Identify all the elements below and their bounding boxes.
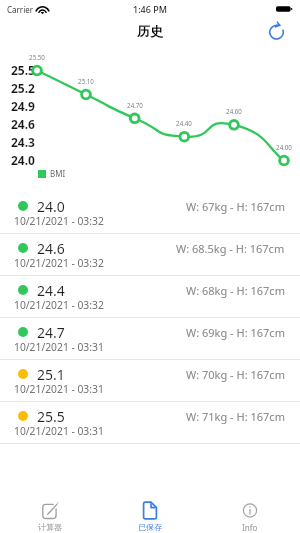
staticText: 24.60 — [226, 107, 242, 115]
staticText: W: 69kg - H: 167cm — [186, 325, 285, 340]
staticText: 24.4 — [37, 281, 65, 300]
staticText: BMI — [50, 168, 66, 179]
button[interactable]: 25.1 — [0, 360, 300, 401]
staticText: 24.6 — [11, 116, 35, 132]
staticText: W: 68kg - H: 167cm — [186, 283, 285, 298]
button[interactable]: 24.7 — [0, 318, 300, 359]
staticText: 25.5 — [11, 62, 35, 78]
staticText: 10/21/2021 - 03:31 — [14, 424, 104, 438]
staticText: 25.2 — [11, 80, 35, 96]
staticText: W: 67kg - H: 167cm — [186, 199, 285, 214]
staticText: W: 68.5kg - H: 167cm — [176, 241, 285, 256]
button[interactable]: 计算器 — [0, 490, 100, 533]
staticText: 10/21/2021 - 03:32 — [14, 256, 104, 270]
staticText: Info — [242, 522, 258, 533]
staticText: W: 70kg - H: 167cm — [186, 367, 285, 382]
button[interactable]: 25.5 — [0, 402, 300, 443]
staticText: 24.00 — [276, 143, 292, 151]
button[interactable]: 已保存 — [100, 490, 200, 533]
staticText: 25.5 — [37, 407, 65, 426]
staticText: 24.70 — [127, 101, 143, 109]
staticText: 25.50 — [29, 53, 45, 61]
staticText: 10/21/2021 - 03:31 — [14, 382, 104, 396]
button[interactable]: 24.4 — [0, 276, 300, 317]
staticText: Carrier — [7, 4, 34, 15]
staticText: 10/21/2021 - 03:31 — [14, 340, 104, 354]
button[interactable]: 24.6 — [0, 234, 300, 275]
staticText: 24.6 — [37, 239, 65, 258]
staticText: 24.0 — [37, 197, 65, 216]
staticText: 计算器 — [38, 522, 62, 532]
button[interactable]: 24.0 — [0, 192, 300, 233]
staticText: 24.3 — [11, 134, 35, 150]
staticText: W: 71kg - H: 167cm — [186, 409, 285, 424]
staticText: 24.0 — [11, 152, 35, 168]
staticText: 10/21/2021 - 03:32 — [14, 214, 104, 228]
staticText: 25.1 — [37, 365, 65, 384]
staticText: 10/21/2021 - 03:32 — [14, 298, 104, 312]
button[interactable]: Refresh — [266, 19, 288, 41]
button[interactable]: Info — [200, 490, 300, 533]
staticText: 1:46 PM — [133, 3, 167, 15]
staticText: 历史 — [137, 23, 163, 39]
staticText: 已保存 — [138, 522, 162, 532]
staticText: 24.40 — [176, 119, 192, 127]
staticText: 24.7 — [37, 323, 65, 342]
staticText: 24.9 — [11, 98, 35, 114]
staticText: 25.10 — [78, 77, 94, 85]
